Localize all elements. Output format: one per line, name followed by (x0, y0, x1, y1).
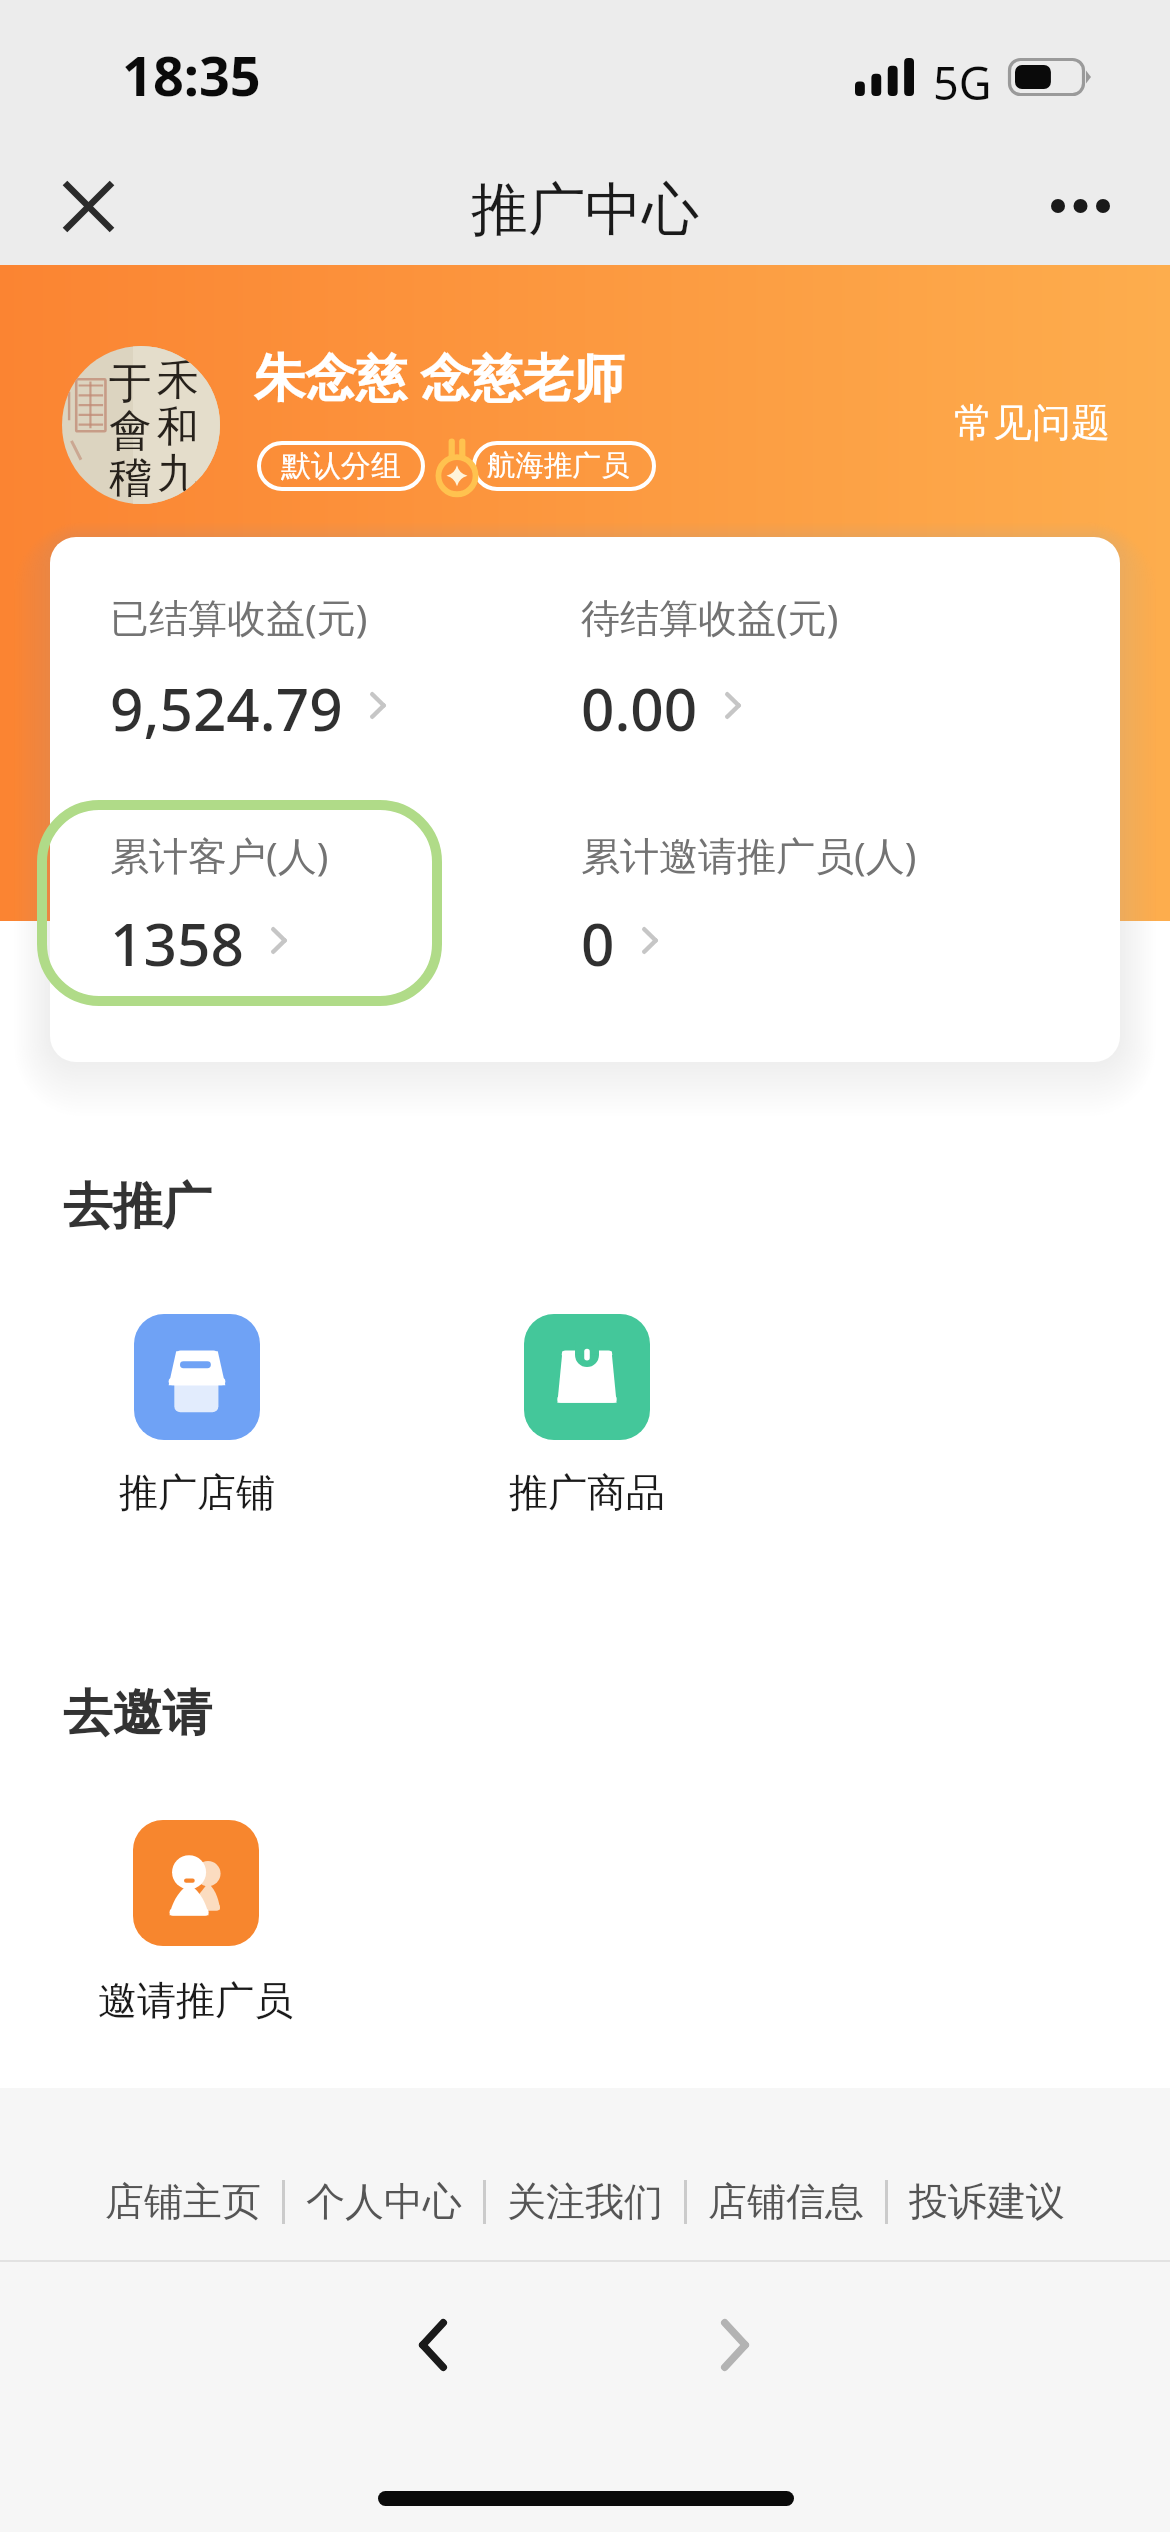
button[interactable]: 关注我们 (486, 2177, 684, 2226)
staticText: 待结算收益(元) (581, 590, 839, 643)
button[interactable]: 待结算收益(元) (581, 590, 839, 748)
button[interactable]: 航海推广员 (472, 441, 656, 491)
staticText: 推广中心 (471, 174, 699, 246)
staticText: 推广店铺 (119, 1468, 275, 1517)
staticText: 店铺主页 (105, 2177, 261, 2226)
staticText: 推广商品 (509, 1468, 665, 1517)
button[interactable]: 常见问题 (954, 398, 1110, 447)
button[interactable]: 推广店铺 (67, 1314, 327, 1518)
button[interactable]: 已结算收益(元) (110, 590, 386, 748)
staticText: 累计客户(人) (110, 828, 329, 881)
staticText: 累计邀请推广员(人) (581, 828, 917, 881)
staticText: 朱念慈 念慈老师 (254, 341, 625, 411)
staticText: 于會稽 (109, 357, 153, 504)
staticText: 店铺信息 (708, 2177, 864, 2226)
button[interactable]: 累计客户(人) (110, 828, 329, 983)
staticText: 个人中心 (306, 2177, 462, 2226)
staticText: 0.00 (581, 668, 698, 748)
staticText: 5G (933, 52, 992, 113)
staticText: 默认分组 (281, 447, 401, 485)
button[interactable]: 推广商品 (457, 1314, 717, 1518)
staticText: 0 (581, 903, 615, 983)
button[interactable]: 邀请推广员 (65, 1820, 325, 2026)
staticText: 去推广 (63, 1175, 212, 1237)
button[interactable]: 默认分组 (257, 441, 425, 491)
staticText: 9,524.79 (110, 668, 343, 748)
staticText: 去邀请 (63, 1682, 212, 1744)
button[interactable]: 累计邀请推广员(人) (581, 828, 917, 983)
staticText: 18:35 (122, 38, 261, 112)
staticText: 邀请推广员 (98, 1976, 293, 2025)
button[interactable]: 店铺主页 (84, 2177, 282, 2226)
button[interactable]: 店铺信息 (687, 2177, 885, 2226)
button[interactable]: Forward (650, 2260, 820, 2430)
button[interactable]: Close (18, 150, 158, 262)
staticText: 投诉建议 (909, 2177, 1065, 2226)
staticText: 已结算收益(元) (110, 590, 368, 643)
button[interactable]: 投诉建议 (888, 2177, 1086, 2226)
staticText: 航海推广员 (487, 448, 630, 484)
button[interactable]: Back (348, 2260, 518, 2430)
button[interactable]: 个人中心 (285, 2177, 483, 2226)
button[interactable]: More options (1010, 150, 1150, 262)
staticText: 禾和九 (157, 354, 201, 500)
staticText: 1358 (110, 903, 244, 983)
staticText: 关注我们 (507, 2177, 663, 2226)
